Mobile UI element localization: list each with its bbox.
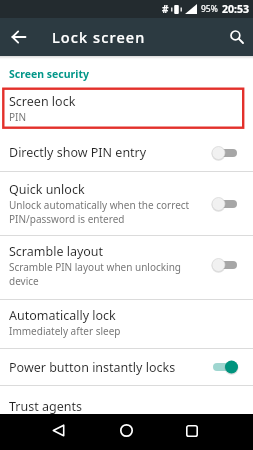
- staticText: Unlock automatically when the correct: [9, 198, 190, 212]
- staticText: 95%: [201, 3, 218, 15]
- staticText: Scramble PIN layout when unlocking: [9, 260, 182, 274]
- button[interactable]: Quick unlock: [0, 172, 253, 235]
- staticText: device: [9, 274, 39, 288]
- button[interactable]: Trust agents: [0, 386, 253, 414]
- button[interactable]: Screen lock: [0, 87, 253, 130]
- button[interactable]: [0, 18, 38, 56]
- staticText: Trust agents: [9, 398, 82, 414]
- button[interactable]: [44, 414, 72, 447]
- staticText: Screen lock: [9, 93, 76, 110]
- staticText: Power button instantly locks: [9, 359, 176, 376]
- staticText: #: [162, 2, 169, 16]
- staticText: Quick unlock: [9, 181, 85, 198]
- button[interactable]: [221, 21, 253, 53]
- staticText: PIN/password is entered: [9, 212, 125, 226]
- button[interactable]: Directly show PIN entry: [0, 130, 253, 171]
- staticText: 20:53: [222, 2, 249, 16]
- staticText: Immediately after sleep: [9, 324, 121, 338]
- staticText: Screen security: [9, 67, 89, 81]
- button[interactable]: [178, 414, 206, 447]
- button[interactable]: Scramble layout: [0, 236, 253, 299]
- staticText: Directly show PIN entry: [9, 144, 147, 161]
- button[interactable]: [112, 414, 140, 447]
- staticText: Lock screen: [52, 27, 146, 47]
- button[interactable]: Automatically lock: [0, 300, 253, 348]
- staticText: PIN: [9, 110, 27, 124]
- staticText: Automatically lock: [9, 307, 116, 324]
- button[interactable]: Power button instantly locks: [0, 349, 253, 385]
- staticText: Scramble layout: [9, 243, 104, 260]
